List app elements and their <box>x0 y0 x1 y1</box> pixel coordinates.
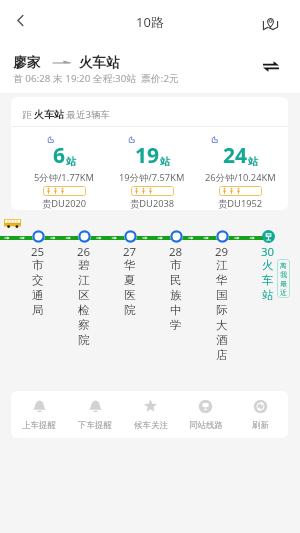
staticText: 19分钟/7.57KM <box>119 171 185 184</box>
button[interactable]: 30 <box>245 230 291 302</box>
staticText: 局 <box>32 303 44 317</box>
staticText: 火 <box>262 258 274 272</box>
button[interactable]: 28 <box>153 230 199 332</box>
staticText: 察 <box>78 318 90 332</box>
staticText: 5分钟/1.77KM <box>34 171 95 184</box>
staticText: 贵DU2038 <box>130 197 175 210</box>
staticText: 华 <box>124 258 136 272</box>
staticText: 贵DU1952 <box>218 197 263 210</box>
staticText: 19 <box>135 141 160 170</box>
staticText: 站 <box>160 155 170 168</box>
staticText: 市 <box>32 258 44 272</box>
staticText: 同站线路 <box>189 420 223 431</box>
staticText: 区 <box>78 288 90 302</box>
staticText: 28 <box>169 244 183 257</box>
staticText: 站 <box>66 155 76 168</box>
staticText: 24 <box>223 141 248 170</box>
staticText: 火车站 <box>34 108 64 121</box>
staticText: 火车站 <box>79 54 120 71</box>
staticText: 际 <box>216 303 228 317</box>
staticText: 族 <box>170 288 182 302</box>
staticText: 上车提醒 <box>22 420 56 431</box>
button[interactable]: 上车提醒 <box>11 391 67 438</box>
staticText: 下车提醒 <box>78 420 112 431</box>
button[interactable]: 同站线路 <box>178 391 233 438</box>
button[interactable]: 候车关注 <box>123 391 178 438</box>
staticText: 最 <box>280 279 287 288</box>
staticText: 江 <box>78 273 90 287</box>
staticText: 检 <box>78 303 90 317</box>
staticText: 大 <box>216 318 228 332</box>
staticText: 最近3辆车 <box>64 108 110 121</box>
button[interactable]: 29 <box>199 230 245 362</box>
staticText: 酒 <box>216 333 228 347</box>
staticText: 离 <box>280 261 287 270</box>
staticText: 华 <box>216 273 228 287</box>
button[interactable]: Swap direction <box>255 50 287 82</box>
staticText: 医 <box>124 288 136 302</box>
staticText: 26 <box>77 244 91 257</box>
staticText: 碧 <box>78 258 90 272</box>
staticText: 江 <box>216 258 228 272</box>
staticText: 候车关注 <box>134 420 168 431</box>
staticText: 中 <box>170 303 182 317</box>
button[interactable]: 26 <box>61 230 107 347</box>
button[interactable]: Back <box>0 0 40 40</box>
button[interactable]: 下车提醒 <box>67 391 123 438</box>
staticText: 国 <box>216 288 228 302</box>
staticText: 市 <box>170 258 182 272</box>
staticText: 贵DU2020 <box>42 197 87 210</box>
staticText: 我 <box>280 270 287 279</box>
button[interactable]: 6 <box>21 127 108 210</box>
staticText: 29 <box>215 244 229 257</box>
staticText: 10路 <box>0 13 300 31</box>
button[interactable]: 27 <box>107 230 153 317</box>
staticText: 通 <box>32 288 44 302</box>
staticText: 近 <box>280 288 287 297</box>
staticText: 车 <box>262 273 274 287</box>
staticText: 27 <box>123 244 137 257</box>
button[interactable]: 19 <box>108 127 196 210</box>
button[interactable]: 24 <box>196 127 284 210</box>
staticText: 站 <box>262 288 274 302</box>
staticText: 刷新 <box>252 420 269 431</box>
staticText: 6 <box>53 141 66 170</box>
staticText: 距 <box>22 108 34 121</box>
staticText: 站 <box>248 155 258 168</box>
staticText: 夏 <box>124 273 136 287</box>
staticText: 交 <box>32 273 44 287</box>
staticText: 学 <box>170 318 182 332</box>
staticText: 廖家 <box>13 54 40 71</box>
staticText: 民 <box>170 273 182 287</box>
staticText: 25 <box>31 244 45 257</box>
button[interactable]: Map view <box>255 3 286 43</box>
staticText: 26分钟/10.24KM <box>205 171 276 184</box>
staticText: 店 <box>216 348 228 362</box>
staticText: 院 <box>124 303 136 317</box>
button[interactable]: 25 <box>15 230 61 317</box>
staticText: 院 <box>78 333 90 347</box>
staticText: 首 06:28 末 19:20 全程:30站 票价:2元 <box>13 72 179 85</box>
button[interactable]: 刷新 <box>233 391 288 438</box>
staticText: 30 <box>261 244 275 257</box>
